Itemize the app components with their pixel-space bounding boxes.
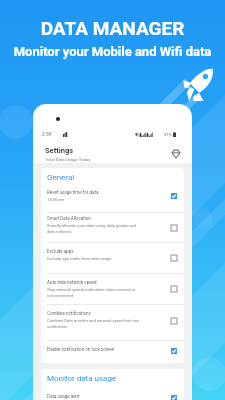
button[interactable]: Reset usage time for data [41, 186, 184, 212]
staticText: Data usage alert [47, 394, 80, 399]
staticText: 12:00 am [47, 197, 65, 202]
button[interactable]: Combine notifications [41, 305, 184, 340]
staticText: Exclude app traffic from data usage [47, 256, 112, 261]
button[interactable]: Exclude apps [41, 243, 184, 273]
staticText: Stop network speed notification when net… [47, 287, 141, 298]
staticText: Monitor data usage [47, 374, 117, 383]
staticText: DATA MANAGER [0, 17, 225, 39]
staticText: Combine notifications [47, 311, 91, 316]
staticText: Reset usage time for data [47, 190, 99, 195]
button[interactable]: Toggle setting [171, 225, 177, 231]
button[interactable]: Toggle setting [171, 395, 177, 400]
staticText: Settings [45, 146, 74, 155]
staticText: Exclude apps [47, 249, 74, 254]
staticText: Smart Data Allocation [47, 216, 91, 221]
staticText: Auto hide network speed [47, 280, 97, 285]
button[interactable]: Toggle setting [171, 318, 177, 324]
staticText: Total Data Usage Today [45, 157, 91, 162]
staticText: Enable notification on lock screen [47, 347, 115, 352]
button[interactable]: Enable notification on lock screen [41, 341, 184, 363]
staticText: Smartly allocate your data using daily q… [47, 223, 141, 234]
staticText: 2:39 [42, 131, 52, 137]
button[interactable]: Premium [169, 148, 182, 161]
button[interactable]: Smart Data Allocation [41, 213, 184, 242]
staticText: 31% [164, 132, 172, 137]
staticText: Monitor your Mobile and Wifi data [0, 44, 225, 59]
button[interactable]: Toggle setting [171, 255, 177, 261]
button[interactable]: Toggle setting [171, 348, 177, 354]
staticText: General [47, 173, 75, 182]
staticText: Combine Data monitor and network speed i… [47, 318, 141, 329]
button[interactable]: Data usage alert [41, 388, 184, 400]
button[interactable]: Toggle setting [171, 193, 177, 199]
button[interactable]: Auto hide network speed [41, 274, 184, 304]
button[interactable]: Toggle setting [171, 286, 177, 292]
